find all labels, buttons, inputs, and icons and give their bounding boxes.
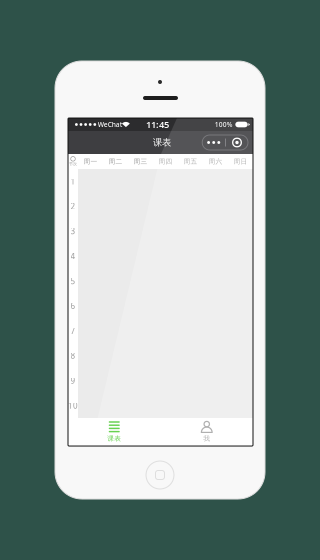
- staticText: 7: [70, 325, 75, 336]
- staticText: 周三: [133, 157, 147, 166]
- staticText: 9: [70, 375, 75, 386]
- staticText: 10: [68, 400, 78, 411]
- staticText: 课表: [107, 435, 121, 443]
- staticText: 4: [70, 251, 75, 261]
- staticText: 周五: [183, 157, 197, 166]
- staticText: 2: [70, 201, 75, 212]
- staticText: 8: [70, 350, 75, 361]
- staticText: 6: [70, 301, 75, 311]
- staticText: 1: [70, 176, 75, 187]
- staticText: 周日: [233, 157, 247, 166]
- staticText: 我: [203, 434, 210, 443]
- staticText: 3: [70, 226, 75, 236]
- staticText: 周四: [158, 157, 172, 166]
- staticText: 11:45: [146, 118, 169, 131]
- button[interactable]: Close: [226, 135, 248, 150]
- staticText: WeChat: [98, 120, 123, 129]
- staticText: 5: [70, 276, 75, 286]
- staticText: 课表: [153, 137, 171, 148]
- button[interactable]: 我: [160, 418, 253, 446]
- staticText: 周六: [208, 157, 222, 166]
- staticText: 节次: [69, 161, 77, 166]
- button[interactable]: 课表: [68, 418, 160, 446]
- button[interactable]: More: [202, 135, 225, 150]
- staticText: 周二: [108, 157, 122, 166]
- staticText: 100%: [215, 120, 233, 129]
- staticText: 周一: [83, 157, 97, 166]
